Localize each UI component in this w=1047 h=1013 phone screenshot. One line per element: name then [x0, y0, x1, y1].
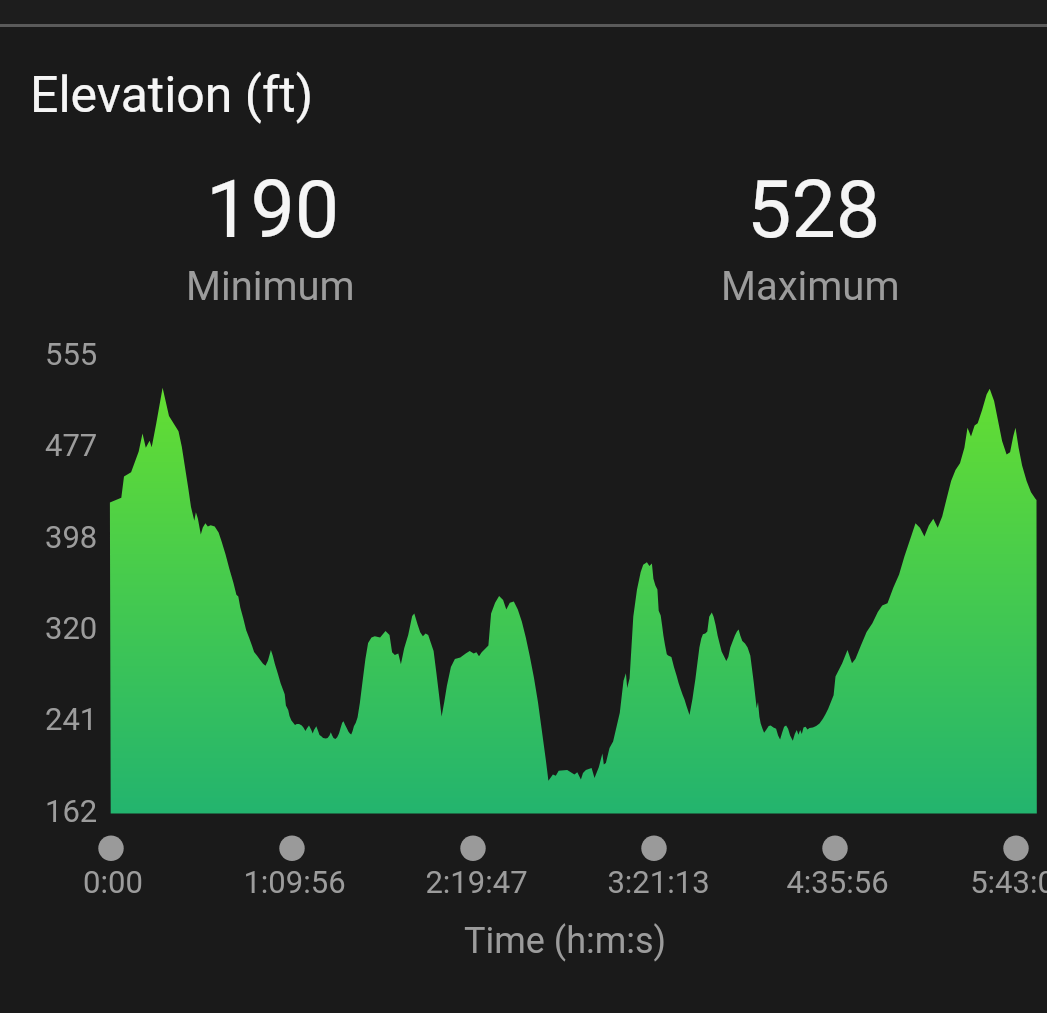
staticText: 3:21:13: [607, 864, 710, 900]
staticText: 241: [45, 701, 98, 737]
staticText: 320: [45, 610, 98, 646]
button[interactable]: 190: [170, 150, 371, 318]
staticText: 1:09:56: [243, 864, 346, 900]
staticText: 528: [747, 164, 881, 257]
staticText: 4:35:56: [786, 864, 889, 900]
staticText: 555: [45, 336, 98, 372]
staticText: Maximum: [721, 263, 900, 310]
staticText: 398: [45, 519, 98, 555]
staticText: 5:43:0: [970, 864, 1047, 900]
staticText: 190: [206, 164, 340, 257]
staticText: Minimum: [186, 263, 355, 310]
staticText: 162: [45, 793, 98, 829]
staticText: 0:00: [83, 864, 143, 900]
staticText: Elevation (ft): [30, 66, 314, 125]
staticText: 477: [45, 427, 98, 463]
staticText: 2:19:47: [425, 864, 528, 900]
staticText: Time (h:m:s): [464, 920, 667, 962]
button[interactable]: 528: [705, 150, 916, 318]
button[interactable]: Elevation (ft): [14, 50, 338, 137]
button[interactable]: Elevation over time chart: [0, 0, 1047, 1013]
